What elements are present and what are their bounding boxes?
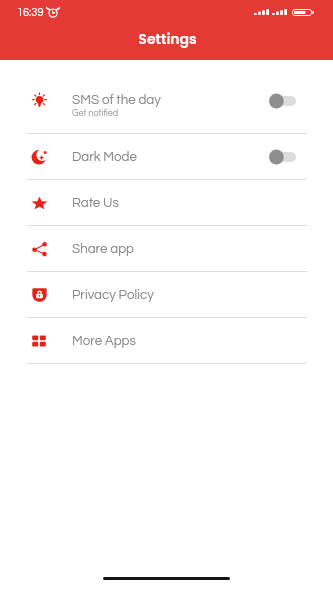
staticText: Share app [72, 242, 135, 256]
button[interactable]: SMS of the day [0, 88, 333, 133]
staticText: Privacy Policy [72, 288, 154, 302]
staticText: Settings [138, 29, 197, 49]
staticText: Dark Mode [72, 150, 137, 164]
staticText: Rate Us [72, 196, 119, 210]
button[interactable]: Dark Mode [0, 134, 333, 179]
staticText: More Apps [72, 334, 136, 348]
staticText: Get notified [72, 109, 119, 118]
button[interactable]: Share app [0, 226, 333, 271]
button[interactable]: More Apps [0, 318, 333, 363]
staticText: 16:39 [17, 7, 44, 18]
staticText: SMS of the day [72, 93, 161, 107]
button[interactable]: Toggle [269, 147, 307, 167]
button[interactable]: Rate Us [0, 180, 333, 225]
button[interactable]: Privacy Policy [0, 272, 333, 317]
button[interactable]: Toggle [269, 91, 307, 111]
